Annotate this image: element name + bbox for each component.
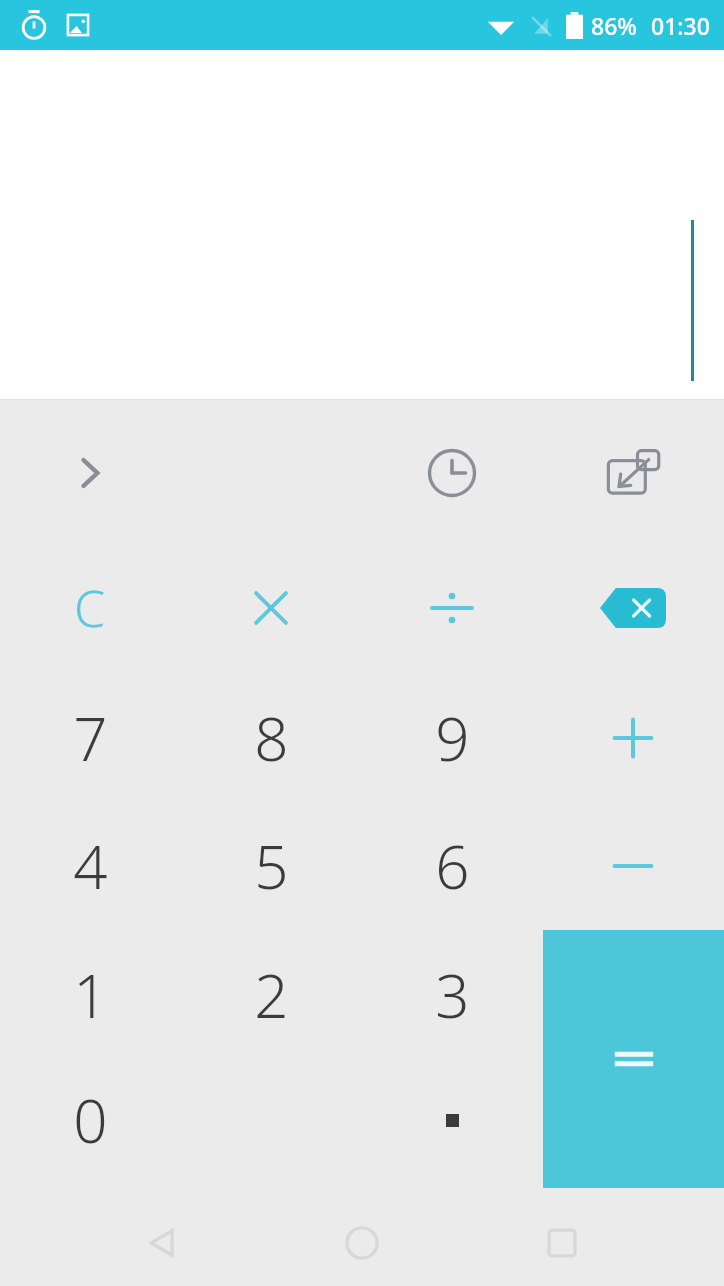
button[interactable]: 8 bbox=[183, 676, 359, 800]
button[interactable]: 1 bbox=[2, 933, 178, 1057]
button[interactable]: 6 bbox=[364, 804, 540, 928]
button[interactable]: . bbox=[364, 1058, 540, 1182]
button[interactable]: 3 bbox=[364, 933, 540, 1057]
button[interactable]: 9 bbox=[364, 676, 540, 800]
button[interactable]: 2 bbox=[183, 933, 359, 1057]
staticText: 9 bbox=[435, 697, 470, 779]
button[interactable]: Divide bbox=[364, 546, 540, 670]
staticText: 86% bbox=[591, 10, 637, 41]
button[interactable]: Multiply bbox=[183, 546, 359, 670]
staticText: C bbox=[74, 574, 106, 642]
staticText: 6 bbox=[435, 825, 470, 907]
button[interactable]: Clear bbox=[2, 546, 178, 670]
staticText: 1 bbox=[73, 954, 108, 1036]
button[interactable]: Back bbox=[124, 1205, 200, 1281]
button[interactable]: 0 bbox=[2, 1058, 178, 1182]
staticText: 2 bbox=[254, 954, 289, 1036]
button[interactable]: History bbox=[382, 413, 522, 533]
staticText: 7 bbox=[73, 697, 108, 779]
button[interactable]: Backspace bbox=[545, 546, 721, 670]
staticText: 01:30 bbox=[651, 10, 710, 41]
staticText: 8 bbox=[254, 697, 289, 779]
staticText: 0 bbox=[73, 1079, 108, 1161]
button[interactable]: Next bbox=[20, 413, 160, 533]
staticText: 3 bbox=[435, 954, 470, 1036]
button[interactable]: 5 bbox=[183, 804, 359, 928]
staticText: 5 bbox=[254, 825, 289, 907]
button[interactable]: 7 bbox=[2, 676, 178, 800]
staticText: 4 bbox=[73, 825, 108, 907]
button[interactable]: 4 bbox=[2, 804, 178, 928]
button[interactable]: Equals bbox=[543, 930, 724, 1188]
button[interactable]: Collapse bbox=[563, 413, 703, 533]
button[interactable]: Recents bbox=[524, 1205, 600, 1281]
button[interactable]: Home bbox=[324, 1205, 400, 1281]
button[interactable]: Plus bbox=[545, 676, 721, 800]
button[interactable]: Minus bbox=[545, 804, 721, 928]
